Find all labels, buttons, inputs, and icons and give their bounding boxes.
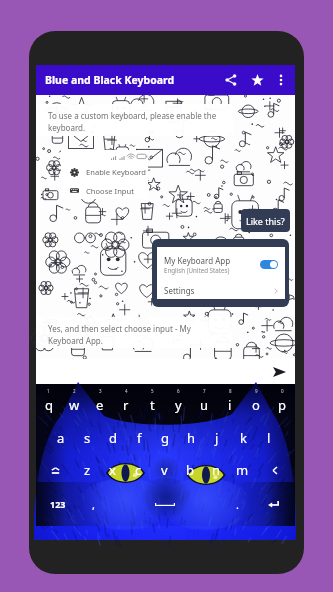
staticText: z [84,461,91,479]
staticText: To use a custom keyboard, please enable … [48,110,217,121]
button[interactable]: c [125,458,151,482]
button[interactable]: Like this? [241,209,290,232]
button[interactable]: o [243,394,269,416]
staticText: l [267,429,271,447]
button[interactable]: w [61,394,87,416]
button[interactable]: Space [107,493,223,515]
button[interactable]: My Keyboard App [164,255,278,274]
staticText: c [135,461,142,479]
button[interactable]: z [75,458,100,482]
staticText: 6 [177,388,180,394]
button[interactable]: Shift [36,458,75,482]
button[interactable]: Enter [251,493,295,515]
staticText: g [161,429,169,447]
button[interactable]: s [74,425,100,450]
staticText: v [161,461,168,479]
button[interactable]: Backspace [255,458,295,482]
staticText: a [57,429,65,447]
staticText: h [187,429,196,447]
staticText: j [215,429,219,447]
button[interactable]: e [87,394,113,416]
staticText: Like this? [246,215,285,227]
staticText: Choose Input [86,186,134,196]
staticText: d [109,429,117,447]
staticText: w [69,396,80,414]
button[interactable]: k [230,425,256,450]
staticText: 4 [125,388,128,394]
button[interactable]: x [100,458,125,482]
button[interactable]: a [48,425,74,450]
staticText: 7 [203,388,206,394]
button[interactable]: n [203,458,229,482]
staticText: t [150,396,155,414]
staticText: e [96,396,104,414]
button[interactable]: v [151,458,177,482]
staticText: f [137,429,142,447]
button[interactable]: g [152,425,178,450]
button[interactable]: q [36,394,61,416]
button[interactable]: b [177,458,203,482]
button[interactable]: Enable My Keyboard App [260,260,278,269]
staticText: keyboard. [48,122,86,133]
staticText: . [236,497,239,512]
staticText: y [175,396,182,414]
button[interactable]: m [229,458,255,482]
button[interactable]: . [223,493,251,515]
staticText: s [84,429,91,447]
button[interactable]: f [126,425,152,450]
staticText: n [212,461,221,479]
staticText: m [236,461,249,479]
button[interactable]: r [113,394,139,416]
staticText: k [240,429,247,447]
button[interactable]: h [178,425,204,450]
staticText: 0 [281,388,284,394]
button[interactable]: Enable Keyboard [61,162,148,182]
staticText: 2 [73,388,76,394]
staticText: Keyboard App. [48,335,103,346]
button[interactable]: u [191,394,217,416]
staticText: Yes, and then select choose input - My [48,323,191,334]
staticText: r [123,396,129,414]
staticText: Enable Keyboard [86,167,146,177]
button[interactable]: d [100,425,126,450]
button[interactable]: t [139,394,165,416]
staticText: o [252,396,260,414]
staticText: b [186,461,194,479]
staticText: Blue and Black Keyboard [45,73,175,87]
button[interactable]: p [269,394,295,416]
staticText: My Keyboard App [164,255,231,266]
staticText: p [278,396,286,414]
staticText: x [109,461,116,479]
staticText: 9 [255,388,258,394]
staticText: q [45,396,53,414]
button[interactable]: Rate app [244,67,270,93]
staticText: English (United States) [164,266,230,274]
staticText: 3 [99,388,102,394]
button[interactable]: More options [270,69,292,91]
button[interactable]: , [79,493,107,515]
button[interactable]: j [204,425,230,450]
button[interactable]: Settings [164,285,278,296]
button[interactable]: 123 [36,493,79,515]
staticText: , [92,497,95,512]
staticText: 123 [50,498,66,510]
button[interactable]: i [217,394,243,416]
staticText: 8 [229,388,232,394]
staticText: 1 [47,388,50,394]
button[interactable]: l [256,425,282,450]
staticText: 5 [151,388,154,394]
button[interactable]: Choose Input [61,182,148,199]
button[interactable]: y [165,394,191,416]
button[interactable]: Share [218,67,244,93]
button[interactable]: Send [270,363,288,381]
staticText: Settings [164,285,195,296]
staticText: i [228,396,232,414]
staticText: u [200,396,209,414]
